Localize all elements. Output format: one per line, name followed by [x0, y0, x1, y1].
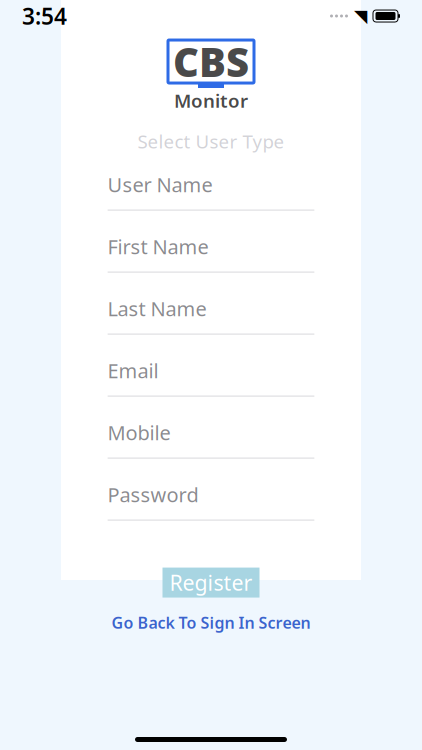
staticText: CBS — [173, 35, 249, 88]
staticText: Select User Type — [137, 129, 284, 154]
staticText: Last Name — [107, 295, 206, 322]
button[interactable]: Register — [162, 568, 259, 598]
button[interactable]: Go Back To Sign In Screen — [111, 614, 310, 632]
staticText: First Name — [107, 233, 208, 260]
staticText: Email — [107, 357, 158, 384]
staticText: Register — [169, 568, 252, 597]
staticText: Password — [107, 481, 198, 508]
staticText: Monitor — [174, 88, 248, 113]
staticText: ◥ — [354, 6, 367, 26]
staticText: 3:54 — [22, 1, 67, 31]
staticText: Mobile — [107, 419, 170, 446]
staticText: User Name — [107, 171, 212, 198]
staticText: Go Back To Sign In Screen — [111, 612, 310, 633]
